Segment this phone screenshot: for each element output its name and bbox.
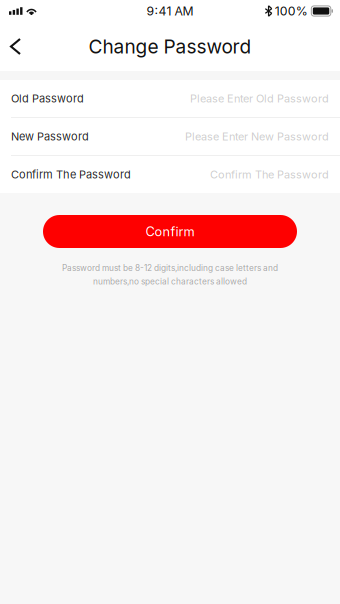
button[interactable]: Confirm The Password xyxy=(0,156,340,193)
button[interactable]: Confirm xyxy=(43,215,297,248)
staticText: Please Enter Old Password xyxy=(190,92,329,105)
staticText: 9:41 AM xyxy=(146,4,193,18)
staticText: Old Password xyxy=(11,92,84,105)
button[interactable]: Back xyxy=(0,24,36,68)
staticText: numbers,no special characters allowed xyxy=(93,276,247,286)
button[interactable]: New Password xyxy=(0,118,340,155)
staticText: Password must be 8-12 digits,including c… xyxy=(62,263,278,273)
staticText: Confirm xyxy=(145,224,194,239)
button[interactable]: Old Password xyxy=(0,80,340,117)
staticText: 100% xyxy=(275,4,308,18)
staticText: New Password xyxy=(11,130,89,143)
staticText: Confirm The Password xyxy=(210,168,329,181)
staticText: Please Enter New Password xyxy=(185,130,329,143)
staticText: Change Password xyxy=(88,35,251,58)
staticText: Confirm The Password xyxy=(11,168,131,181)
